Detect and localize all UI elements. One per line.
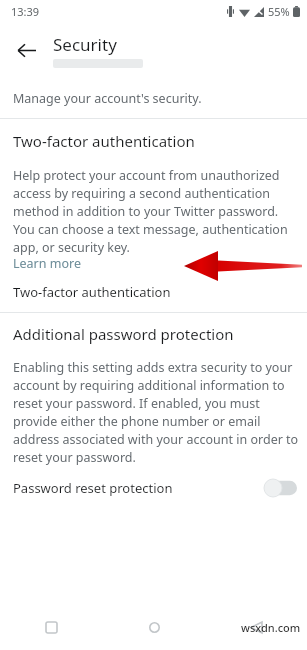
- staticText: Password reset protection: [13, 479, 173, 497]
- staticText: Manage your account's security.: [13, 90, 202, 107]
- staticText: Two-factor authentication: [13, 283, 171, 301]
- staticText: Enabling this setting adds extra securit…: [13, 359, 301, 465]
- staticText: wsxdn.com: [241, 620, 301, 635]
- button[interactable]: Home: [103, 605, 205, 650]
- button[interactable]: Back: [205, 605, 307, 650]
- staticText: Help protect your account from unauthori…: [13, 167, 299, 255]
- button[interactable]: Two-factor authentication: [0, 272, 307, 312]
- button[interactable]: Back: [4, 28, 48, 72]
- staticText: Security: [53, 33, 117, 56]
- button[interactable]: Password reset protection: [0, 465, 307, 511]
- staticText: Learn more: [13, 255, 81, 272]
- staticText: Additional password protection: [13, 324, 234, 344]
- button[interactable]: Recent apps: [0, 605, 103, 650]
- staticText: 55%: [268, 4, 290, 19]
- staticText: 13:39: [11, 4, 40, 19]
- button[interactable]: Learn more: [13, 255, 81, 272]
- staticText: Two-factor authentication: [13, 131, 195, 151]
